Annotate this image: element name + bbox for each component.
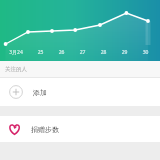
staticText: 捐赠步数 <box>31 125 59 134</box>
button[interactable]: 添加 <box>0 78 160 106</box>
other: 捐赠步数 <box>8 123 21 136</box>
staticText: 26 <box>51 49 72 56</box>
button[interactable]: 捐赠步数 <box>0 116 160 142</box>
staticText: 添加 <box>33 88 47 97</box>
staticText: 3月24 <box>2 49 30 56</box>
staticText: 30 <box>135 49 156 56</box>
staticText: 25 <box>30 49 51 56</box>
staticText: 29 <box>114 49 135 56</box>
staticText: 27 <box>72 49 93 56</box>
staticText: 关注的人 <box>5 66 27 73</box>
staticText: 28 <box>93 49 114 56</box>
